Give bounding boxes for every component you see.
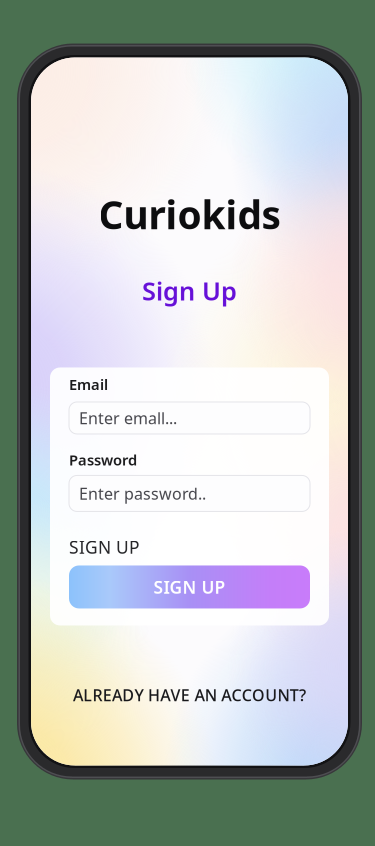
staticText: Enter emall... [79, 407, 177, 428]
button[interactable]: ALREADY HAVE AN ACCOUNT? [73, 684, 306, 706]
staticText: SIGN UP [69, 535, 139, 558]
staticText: ALREADY HAVE AN ACCOUNT? [73, 684, 306, 706]
staticText: SIGN UP [153, 575, 225, 598]
button[interactable]: Enter password.. [69, 475, 310, 511]
staticText: Password [69, 450, 137, 469]
button[interactable]: SIGN UP [69, 565, 310, 608]
button[interactable]: Enter emall... [69, 402, 310, 434]
staticText: Enter password.. [79, 483, 206, 504]
staticText: Curiokids [98, 188, 280, 240]
staticText: Sign Up [142, 274, 237, 307]
staticText: Email [69, 374, 108, 394]
